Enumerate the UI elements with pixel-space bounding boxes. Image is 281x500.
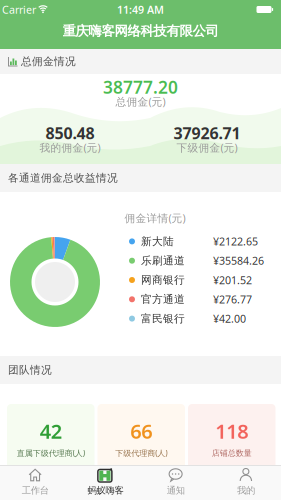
staticText: 我的佣金(元): [39, 140, 100, 155]
staticText: 直属下级代理商(人): [17, 448, 85, 458]
staticText: ¥201.52: [213, 273, 252, 287]
button[interactable]: 我的: [211, 465, 281, 500]
staticText: 蚂蚁嗨客: [87, 485, 123, 496]
staticText: 37926.71: [173, 122, 240, 144]
button[interactable]: 通知: [140, 465, 211, 500]
staticText: ¥276.77: [213, 292, 252, 306]
button[interactable]: 66: [97, 404, 185, 474]
staticText: 66: [130, 418, 152, 444]
button[interactable]: 42: [7, 404, 94, 474]
staticText: 工作台: [22, 485, 49, 496]
button[interactable]: 蚂蚁嗨客: [70, 465, 140, 500]
staticText: 网商银行: [141, 273, 185, 286]
staticText: 乐刷通道: [141, 254, 185, 267]
staticText: ¥35584.26: [213, 254, 264, 268]
staticText: ¥42.00: [213, 311, 246, 326]
staticText: 总佣金情况: [21, 55, 76, 68]
staticText: 38777.20: [103, 75, 178, 98]
staticText: 团队情况: [8, 363, 52, 376]
staticText: 官方通道: [141, 293, 185, 306]
staticText: 各通道佣金总收益情况: [8, 171, 118, 184]
staticText: 新大陆: [141, 235, 174, 248]
staticText: 下级佣金(元): [176, 140, 237, 155]
staticText: 总佣金(元): [115, 94, 165, 109]
staticText: 我的: [237, 485, 255, 496]
staticText: 下级代理商(人): [115, 448, 167, 458]
button[interactable]: 118: [188, 404, 275, 474]
staticText: 富民银行: [141, 312, 185, 325]
staticText: 佣金详情(元): [124, 211, 185, 225]
staticText: Carrier: [2, 2, 36, 17]
staticText: 42: [40, 418, 62, 444]
staticText: 通知: [167, 485, 185, 496]
staticText: 118: [215, 418, 248, 444]
staticText: 店铺总数量: [212, 448, 252, 458]
staticText: 850.48: [45, 122, 94, 144]
button[interactable]: 工作台: [0, 465, 70, 500]
staticText: 重庆嗨客网络科技有限公司: [62, 23, 218, 39]
staticText: ¥2122.65: [213, 234, 258, 248]
staticText: 11:49 AM: [117, 2, 164, 17]
